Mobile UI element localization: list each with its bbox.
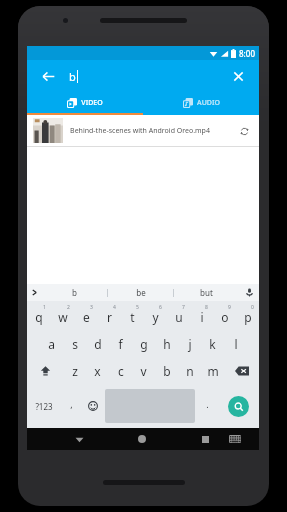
button[interactable]: Search: [218, 384, 259, 428]
button[interactable]: c: [109, 357, 132, 384]
button[interactable]: b: [155, 357, 178, 384]
staticText: 2: [67, 304, 70, 311]
staticText: y: [152, 309, 159, 325]
button[interactable]: Behind-the-scenes with Android Oreo.mp4: [27, 115, 259, 146]
staticText: h: [163, 336, 171, 352]
button[interactable]: Backspace: [224, 357, 259, 384]
button[interactable]: d: [86, 330, 109, 357]
staticText: l: [234, 336, 238, 352]
button[interactable]: Period: [197, 384, 218, 428]
staticText: 0: [251, 304, 254, 311]
staticText: 8:00: [239, 48, 255, 59]
button[interactable]: z: [63, 357, 86, 384]
staticText: t: [130, 309, 135, 325]
button[interactable]: Emoji: [82, 384, 103, 428]
staticText: z: [72, 363, 78, 379]
button[interactable]: Voice input: [239, 284, 259, 301]
button[interactable]: a: [40, 330, 63, 357]
staticText: 1: [43, 304, 46, 311]
staticText: a: [48, 336, 55, 352]
button[interactable]: Shift: [27, 357, 63, 384]
staticText: 5: [136, 304, 139, 311]
button[interactable]: w: [51, 303, 75, 330]
staticText: s: [72, 336, 78, 352]
button[interactable]: m: [201, 357, 224, 384]
staticText: 9: [228, 304, 231, 311]
button[interactable]: l: [224, 330, 247, 357]
button[interactable]: but: [174, 284, 239, 301]
staticText: VIDEO: [81, 98, 103, 108]
staticText: r: [107, 309, 112, 325]
staticText: q: [35, 309, 43, 325]
button[interactable]: Home: [127, 428, 157, 450]
staticText: i: [200, 309, 204, 325]
staticText: b: [72, 287, 77, 298]
button[interactable]: be: [108, 284, 173, 301]
button[interactable]: b: [41, 284, 107, 301]
staticText: v: [140, 363, 147, 379]
staticText: k: [209, 336, 216, 352]
button[interactable]: u: [167, 303, 190, 330]
button[interactable]: f: [109, 330, 132, 357]
button[interactable]: k: [201, 330, 224, 357]
staticText: b: [163, 363, 171, 379]
staticText: b: [69, 69, 76, 84]
button[interactable]: Switch keyboard: [220, 428, 250, 450]
button[interactable]: v: [132, 357, 155, 384]
staticText: e: [83, 309, 90, 325]
button[interactable]: q: [27, 303, 51, 330]
staticText: 6: [159, 304, 162, 311]
button[interactable]: Back: [35, 63, 61, 89]
staticText: 3: [90, 304, 93, 311]
staticText: be: [136, 287, 146, 298]
staticText: d: [94, 336, 102, 352]
button[interactable]: Refresh: [235, 122, 253, 140]
staticText: 4: [113, 304, 116, 311]
staticText: Behind-the-scenes with Android Oreo.mp4: [70, 126, 210, 136]
button[interactable]: ?123: [27, 384, 61, 428]
staticText: p: [244, 309, 252, 325]
button[interactable]: t: [121, 303, 144, 330]
button[interactable]: x: [86, 357, 109, 384]
staticText: j: [188, 336, 192, 352]
button[interactable]: e: [75, 303, 98, 330]
staticText: AUDIO: [197, 98, 220, 108]
staticText: g: [140, 336, 148, 352]
staticText: .: [206, 398, 209, 410]
button[interactable]: j: [178, 330, 201, 357]
staticText: o: [221, 309, 229, 325]
button[interactable]: o: [213, 303, 236, 330]
button[interactable]: p: [236, 303, 259, 330]
staticText: m: [207, 363, 219, 379]
staticText: ?123: [35, 401, 53, 412]
button[interactable]: i: [190, 303, 213, 330]
button[interactable]: n: [178, 357, 201, 384]
button[interactable]: y: [144, 303, 167, 330]
button[interactable]: VIDEO: [27, 92, 143, 113]
button[interactable]: Comma: [61, 384, 82, 428]
button[interactable]: s: [63, 330, 86, 357]
staticText: ,: [70, 398, 73, 410]
staticText: x: [94, 363, 101, 379]
staticText: u: [175, 309, 183, 325]
button[interactable]: Hide keyboard: [64, 428, 94, 450]
button[interactable]: r: [98, 303, 121, 330]
staticText: 7: [182, 304, 185, 311]
staticText: but: [200, 287, 213, 298]
staticText: c: [118, 363, 124, 379]
staticText: n: [186, 363, 194, 379]
staticText: f: [118, 336, 123, 352]
button[interactable]: AUDIO: [143, 92, 259, 113]
staticText: w: [58, 309, 68, 325]
button[interactable]: Clear: [225, 63, 251, 89]
button[interactable]: More suggestions: [27, 284, 41, 301]
button[interactable]: h: [155, 330, 178, 357]
staticText: 8: [205, 304, 208, 311]
button[interactable]: Recents: [190, 428, 220, 450]
button[interactable]: g: [132, 330, 155, 357]
